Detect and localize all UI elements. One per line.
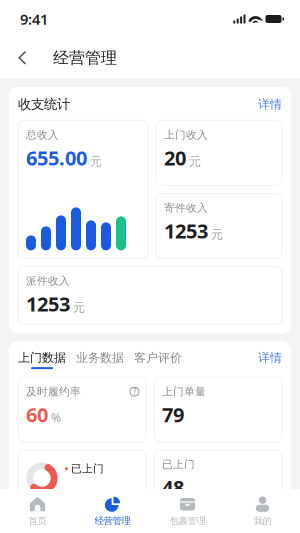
staticText: 元 [189,154,201,169]
staticText: 详情 [258,350,282,365]
button[interactable]: 经营管理 [75,489,150,533]
staticText: 客户评价 [134,350,182,365]
staticText: ? [133,386,136,397]
staticText: 元 [211,227,223,242]
button[interactable]: 客户评价 [134,350,182,369]
staticText: 包裹管理 [169,515,205,527]
button[interactable]: 详情 [258,97,282,111]
staticText: 已上门 [162,458,195,471]
button[interactable]: 首页 [0,489,75,533]
staticText: 1253 [164,217,208,244]
button[interactable]: Back [8,38,36,78]
staticText: 经营管理 [53,48,117,68]
staticText: 48 [162,474,184,500]
button[interactable]: 业务数据 [76,350,124,369]
staticText: 79 [162,401,184,428]
staticText: 首页 [28,515,46,527]
staticText: 元 [73,300,85,315]
staticText: 1253 [26,290,70,317]
staticText: 上门数据 [18,350,66,365]
staticText: 我的 [253,515,271,527]
button[interactable]: 我的 [225,489,300,533]
staticText: 20 [164,144,186,171]
staticText: 上门单量 [162,385,206,398]
staticText: 业务数据 [76,350,124,365]
staticText: 60 [26,401,48,428]
staticText: 已上门 [71,462,104,475]
staticText: 元 [90,154,102,169]
staticText: 9:41 [20,9,48,29]
staticText: 上门收入 [164,128,208,141]
staticText: 及时履约率 [26,385,81,398]
staticText: 经营管理 [94,515,130,527]
staticText: 655.00 [26,144,87,171]
staticText: % [51,410,61,425]
button[interactable]: 详情 [258,350,282,369]
button[interactable]: 上门数据 [18,350,66,369]
staticText: 总收入 [26,128,59,141]
button[interactable]: 包裹管理 [150,489,225,533]
staticText: 详情 [258,97,282,111]
staticText: 收支统计 [18,96,70,112]
staticText: 派件收入 [26,274,70,287]
staticText: 寄件收入 [164,201,208,214]
